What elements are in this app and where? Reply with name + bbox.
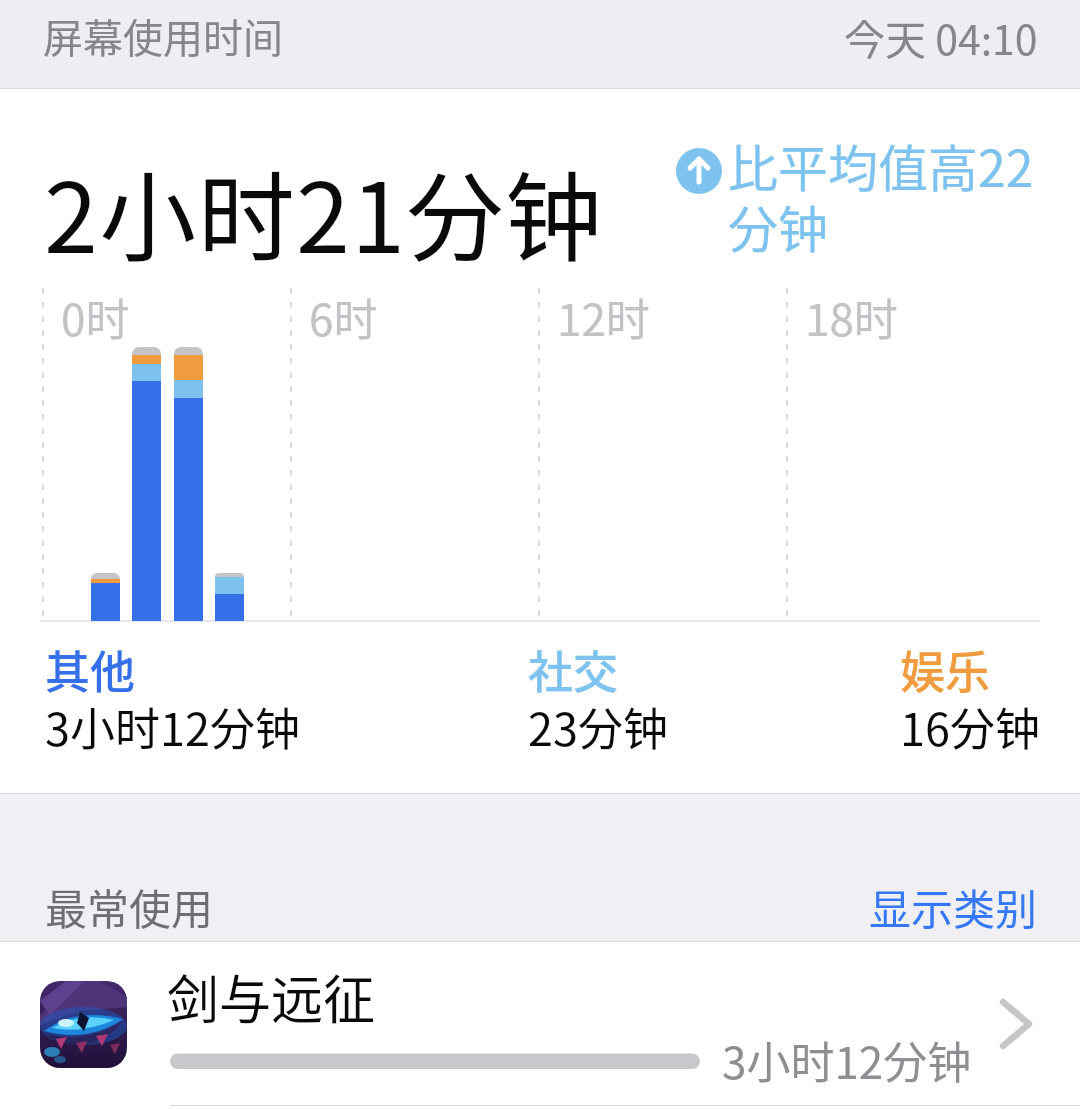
staticText: 娱乐 [900, 637, 991, 702]
staticText: 6时 [309, 285, 378, 349]
staticText: 12时 [557, 285, 650, 349]
button[interactable]: 剑与远征 [0, 942, 1080, 1109]
staticText: 屏幕使用时间 [43, 7, 283, 65]
staticText: 今天 04:10 [844, 7, 1038, 66]
staticText: 社交 [528, 637, 619, 702]
staticText: 0时 [61, 285, 130, 349]
button[interactable]: 显示类别 [869, 876, 1038, 937]
staticText: 比平均值高22 分钟 [728, 129, 1034, 262]
staticText: 18时 [805, 285, 898, 349]
staticText: 3小时12分钟 [45, 694, 300, 759]
staticText: 2小时21分钟 [44, 140, 604, 280]
staticText: 23分钟 [528, 694, 668, 759]
staticText: 显示类别 [869, 876, 1038, 937]
staticText: 其他 [45, 637, 136, 702]
staticText: 16分钟 [900, 694, 1040, 759]
staticText: 剑与远征 [167, 959, 376, 1034]
staticText: 最常使用 [45, 876, 214, 937]
staticText: 3小时12分钟 [722, 1028, 972, 1092]
